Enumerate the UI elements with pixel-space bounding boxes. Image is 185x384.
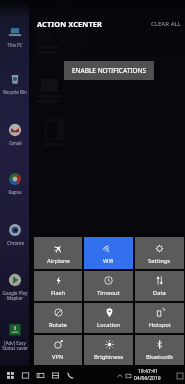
button[interactable]: VPN (34, 335, 82, 365)
button[interactable]: Store (48, 368, 63, 383)
button[interactable]: Data (135, 271, 184, 301)
staticText: This PC (7, 42, 23, 48)
staticText: Data (153, 289, 166, 297)
button[interactable]: Rotate (34, 303, 82, 333)
staticText: VPN (52, 353, 64, 361)
button[interactable]: Wifi (84, 237, 133, 269)
staticText: Location (97, 321, 121, 329)
staticText: ACTION XCENTER (37, 19, 102, 29)
button[interactable]: ENABLE NOTIFICATIONS (64, 61, 154, 80)
staticText: Gmail (9, 140, 22, 146)
staticText: Bluetooth (146, 353, 173, 361)
staticText: Settings (148, 257, 171, 265)
button[interactable]: [Adv] Easy Status saver (2, 323, 28, 351)
staticText: 19:47:41 (138, 368, 158, 375)
staticText: Recycle Bin (3, 89, 27, 95)
button[interactable]: Kapsu (2, 172, 28, 195)
staticText: Hotspot (149, 321, 171, 329)
button[interactable]: Network (124, 371, 133, 380)
button[interactable]: Phone (63, 368, 78, 383)
staticText: [Adv] Easy Status saver (2, 340, 28, 351)
button[interactable]: Recycle Bin (2, 72, 28, 95)
button[interactable]: Task view (18, 368, 33, 383)
staticText: Airplane (47, 257, 70, 265)
staticText: Wifi (103, 257, 114, 265)
button[interactable]: Airplane (34, 237, 82, 269)
button[interactable]: CLEAR ALL (150, 18, 182, 30)
staticText: 04/06/2019 (134, 375, 161, 382)
button[interactable]: Location (84, 303, 133, 333)
staticText: Rotate (49, 321, 67, 329)
staticText: Flash (51, 289, 66, 297)
staticText: Timeout (97, 289, 120, 297)
button[interactable]: 19:47:41 (133, 368, 162, 382)
button[interactable]: Brightness (84, 335, 133, 365)
button[interactable]: Google Play Mapker (2, 273, 28, 301)
staticText: Chrome (7, 240, 24, 246)
button[interactable]: Start (3, 368, 18, 383)
button[interactable]: Chrome (2, 223, 28, 246)
button[interactable]: Flash (34, 271, 82, 301)
button[interactable]: This PC (2, 25, 28, 48)
button[interactable]: Folder (33, 368, 48, 383)
button[interactable]: Show hidden icons (115, 371, 124, 380)
button[interactable]: Bluetooth (135, 335, 184, 365)
staticText: ENABLE NOTIFICATIONS (72, 66, 147, 75)
button[interactable]: Show desktop (175, 371, 184, 380)
staticText: Brightness (94, 353, 124, 361)
button[interactable]: Gmail (2, 123, 28, 146)
button[interactable]: Settings (135, 237, 184, 269)
staticText: Google Play Mapker (2, 290, 28, 301)
button[interactable]: Timeout (84, 271, 133, 301)
staticText: Kapsu (8, 189, 22, 195)
staticText: CLEAR ALL (151, 20, 181, 28)
button[interactable]: Hotspot (135, 303, 184, 333)
